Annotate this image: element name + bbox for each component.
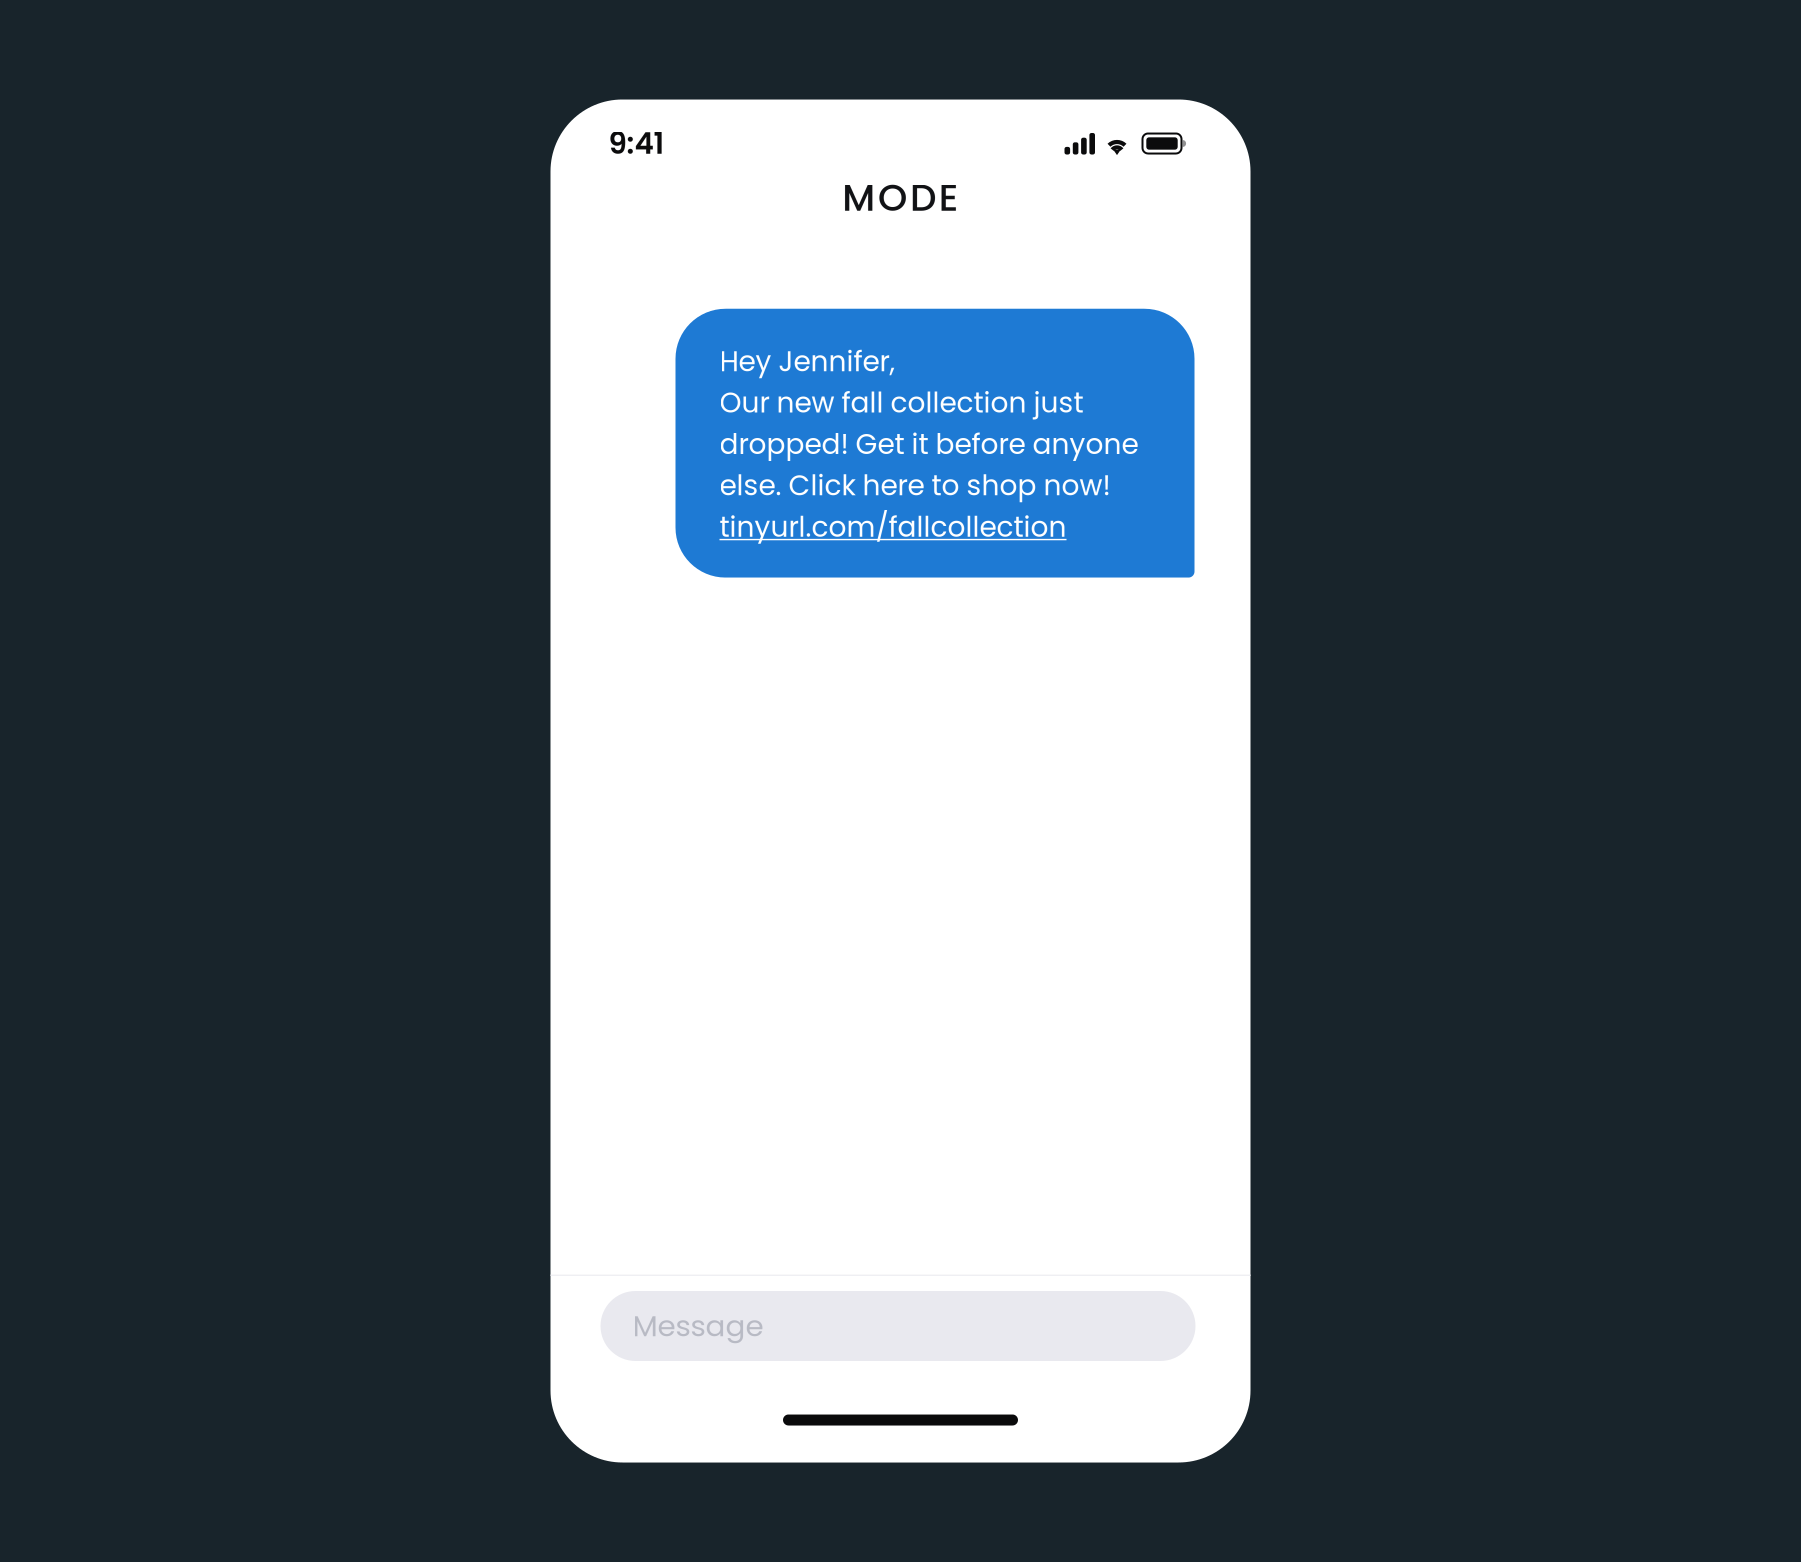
staticText: Message <box>632 1305 763 1347</box>
staticText: 9:41 <box>608 123 664 164</box>
staticText: M <box>842 171 875 224</box>
staticText: O <box>878 171 907 224</box>
staticText: D <box>910 171 936 224</box>
button[interactable]: Message <box>600 1291 1195 1361</box>
staticText: Our new fall collection just <box>719 383 1083 422</box>
staticText: dropped! Get it before anyone <box>719 425 1138 464</box>
staticText: E <box>939 171 959 224</box>
staticText: Hey Jennifer, <box>719 342 895 381</box>
staticText: else. Click here to shop now! <box>719 466 1110 505</box>
staticText: tinyurl.com/fallcollection <box>719 507 1066 547</box>
